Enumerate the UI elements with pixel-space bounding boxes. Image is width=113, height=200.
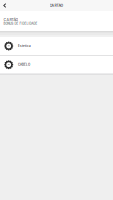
button[interactable]: Back <box>0 0 9 11</box>
staticText: Estetica <box>18 44 31 48</box>
button[interactable]: CABELO <box>0 56 113 74</box>
staticText: CABELO <box>18 63 30 66</box>
staticText: CARTÃO <box>49 3 63 8</box>
staticText: CARTÃO <box>3 17 18 22</box>
button[interactable]: Estetica <box>0 37 113 55</box>
staticText: BONUS DE FIDELIDADE <box>3 22 37 25</box>
